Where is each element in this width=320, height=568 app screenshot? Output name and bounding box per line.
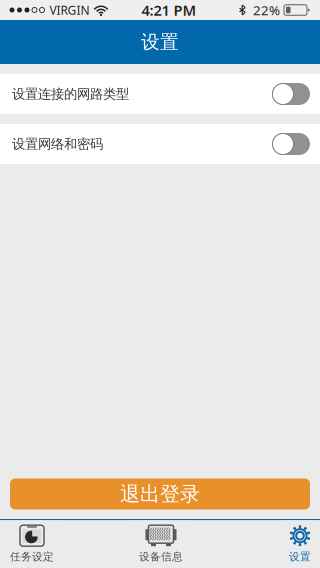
staticText: VIRGIN [49,2,89,18]
button[interactable]: 退出登录 [10,478,310,509]
staticText: 设置连接的网路类型 [12,86,129,102]
button[interactable]: 任务设定 [0,520,64,568]
staticText: 设备信息 [139,550,183,563]
staticText: 任务设定 [10,550,54,563]
staticText: 设置 [289,550,311,563]
button[interactable]: 设置 [280,520,320,568]
staticText: 设置网络和密码 [12,136,103,152]
staticText: 设置 [141,30,179,53]
button[interactable]: 设置网络和密码 [0,124,320,164]
button[interactable]: 设备信息 [129,520,193,568]
staticText: 22% [253,1,280,19]
button[interactable]: 设置连接的网路类型 [0,74,320,114]
staticText: 退出登录 [120,482,200,506]
staticText: 4:21 PM [141,0,196,20]
